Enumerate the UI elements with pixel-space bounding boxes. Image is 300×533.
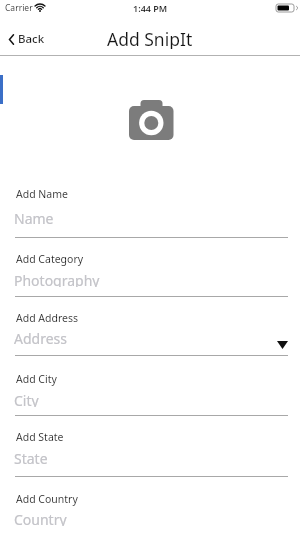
button[interactable]: Add Category xyxy=(0,233,300,285)
button[interactable]: Add Name xyxy=(0,168,300,220)
button[interactable]: Back xyxy=(8,29,52,49)
button[interactable] xyxy=(129,99,174,141)
staticText: Add Country xyxy=(16,492,78,506)
staticText: Name xyxy=(14,209,54,225)
staticText: Photography xyxy=(14,271,100,287)
staticText: Carrier xyxy=(5,2,33,14)
staticText: Address xyxy=(14,329,67,345)
button[interactable]: Add State xyxy=(0,411,300,463)
staticText: Add Address xyxy=(16,311,79,325)
button[interactable]: Add Address xyxy=(0,292,300,344)
staticText: 1:44 PM xyxy=(133,2,168,14)
staticText: Add City xyxy=(16,372,57,386)
staticText: Back xyxy=(18,31,45,47)
staticText: State xyxy=(14,449,48,465)
staticText: Add Name xyxy=(16,187,68,201)
staticText: City xyxy=(14,391,39,407)
staticText: Add Category xyxy=(16,252,84,266)
staticText: Add SnipIt xyxy=(107,27,193,49)
staticText: Add State xyxy=(16,430,64,444)
staticText: Country xyxy=(14,510,67,526)
button[interactable]: Add Country xyxy=(0,473,300,525)
button[interactable]: Add City xyxy=(0,353,300,405)
